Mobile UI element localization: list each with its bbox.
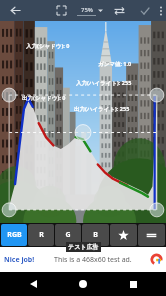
staticText: B <box>93 230 98 240</box>
staticText: 出力(シャドウ): 0 <box>22 94 66 102</box>
staticText: R <box>39 230 44 240</box>
staticText: 75% <box>81 6 93 14</box>
staticText: G <box>65 230 71 240</box>
staticText: ガンマ値: 1.0 <box>98 60 132 68</box>
staticText: 出力(ハイライト): 255 <box>74 105 130 113</box>
button[interactable]: 75% <box>75 0 105 21</box>
staticText: This is a 468x60 test ad. <box>54 255 132 265</box>
button[interactable]: Back <box>16 272 50 296</box>
staticText: テスト広告 <box>68 243 99 251</box>
button[interactable]: Fit to screen <box>50 0 72 21</box>
button[interactable]: Apply <box>135 0 155 21</box>
button[interactable]: B <box>82 224 109 246</box>
button[interactable]: Favorite <box>110 224 137 246</box>
button[interactable]: Menu <box>138 224 165 246</box>
button[interactable]: More options <box>155 0 166 21</box>
staticText: Nice job! <box>4 255 35 265</box>
button[interactable]: Home <box>66 272 100 296</box>
staticText: 入力(ハイライト): 255 <box>76 79 132 87</box>
button[interactable]: RGB <box>1 224 27 246</box>
button[interactable]: G <box>55 224 81 246</box>
button[interactable]: R <box>28 224 54 246</box>
button[interactable]: Compare <box>109 0 129 21</box>
staticText: RGB <box>7 230 22 240</box>
button[interactable]: Back <box>0 0 30 21</box>
button[interactable]: Recent apps <box>116 272 150 296</box>
staticText: 入力(シャドウ): 0 <box>26 42 70 50</box>
button[interactable]: Nice job! <box>0 247 166 272</box>
